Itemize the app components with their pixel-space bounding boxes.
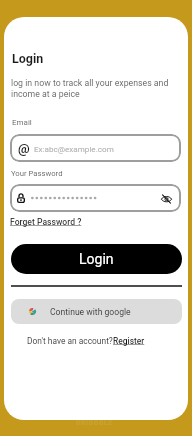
button[interactable]: Show password — [160, 192, 173, 205]
staticText: Email — [12, 118, 32, 127]
staticText: Continue with google — [50, 307, 131, 317]
staticText: @ — [18, 141, 30, 156]
button[interactable]: Register — [113, 336, 145, 346]
staticText: Ex:abc@example.com — [34, 144, 114, 153]
staticText: DRIBBBLE — [76, 419, 113, 427]
button[interactable]: Continue with google — [11, 299, 182, 324]
button[interactable]: Show password — [10, 184, 181, 212]
button[interactable]: @ — [10, 134, 181, 162]
staticText: Login — [79, 251, 114, 267]
staticText: Your Password — [11, 169, 63, 178]
staticText: log in now to track all your expenses an… — [11, 78, 173, 99]
staticText: Login — [12, 51, 44, 66]
button[interactable]: Forget Password ? — [10, 217, 82, 227]
button[interactable]: Login — [11, 244, 182, 274]
staticText: Don't have an account? — [27, 336, 113, 346]
